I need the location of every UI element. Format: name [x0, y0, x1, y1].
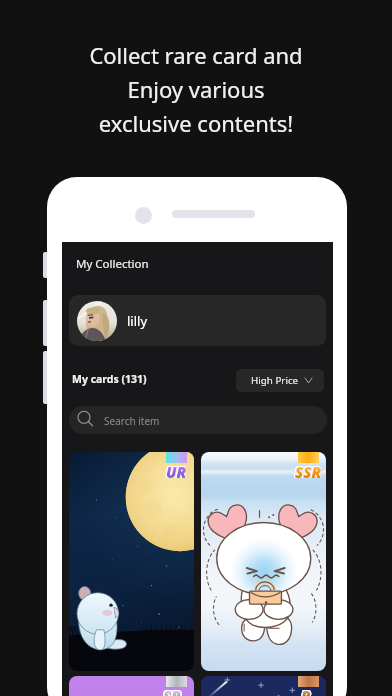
- staticText: SSR: [295, 462, 322, 482]
- staticText: UR: [165, 462, 186, 482]
- staticText: SR: [164, 686, 182, 696]
- staticText: R: [302, 686, 312, 696]
- staticText: SSR: [295, 462, 322, 482]
- button[interactable]: UR: [69, 452, 194, 671]
- staticText: R: [300, 685, 310, 696]
- staticText: R: [300, 686, 310, 696]
- staticText: UR: [166, 461, 187, 481]
- staticText: SSR: [295, 461, 322, 481]
- staticText: SR: [162, 686, 180, 696]
- staticText: UR: [166, 462, 187, 482]
- staticText: SSR: [294, 461, 321, 481]
- button[interactable]: R: [201, 676, 326, 696]
- staticText: R: [301, 686, 311, 696]
- staticText: R: [301, 686, 311, 696]
- staticText: UR: [165, 461, 186, 481]
- staticText: SSR: [295, 462, 322, 482]
- button[interactable]: lilly: [69, 295, 326, 346]
- staticText: R: [300, 686, 310, 696]
- button[interactable]: SR: [69, 676, 194, 696]
- staticText: R: [301, 685, 311, 696]
- staticText: SR: [163, 686, 181, 696]
- staticText: UR: [166, 461, 187, 481]
- staticText: SSR: [294, 462, 321, 482]
- staticText: My cards (131): [72, 372, 147, 386]
- staticText: SR: [164, 686, 182, 696]
- button[interactable]: High Price: [236, 369, 324, 392]
- staticText: UR: [166, 462, 187, 482]
- staticText: UR: [165, 462, 186, 482]
- staticText: SSR: [294, 462, 321, 482]
- staticText: Collect rare card and Enjoy various excl…: [89, 40, 303, 138]
- staticText: R: [302, 685, 312, 696]
- staticText: SR: [162, 685, 180, 696]
- button[interactable]: Search item: [69, 406, 327, 434]
- staticText: lilly: [127, 312, 148, 330]
- staticText: UR: [166, 462, 187, 482]
- staticText: R: [302, 686, 312, 696]
- staticText: SR: [164, 685, 182, 696]
- button[interactable]: SSR: [201, 452, 326, 671]
- staticText: Search item: [104, 414, 160, 428]
- staticText: High Price: [251, 374, 299, 387]
- staticText: SR: [163, 686, 181, 696]
- staticText: SSR: [295, 462, 322, 482]
- staticText: SSR: [295, 461, 322, 481]
- staticText: UR: [166, 462, 187, 482]
- staticText: My Collection: [76, 256, 149, 272]
- staticText: SR: [162, 686, 180, 696]
- staticText: SR: [163, 685, 181, 696]
